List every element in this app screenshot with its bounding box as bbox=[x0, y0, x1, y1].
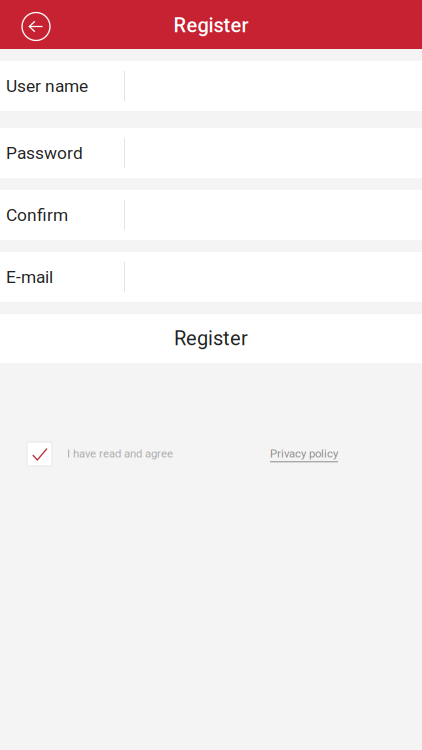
button[interactable]: Privacy policy bbox=[270, 447, 338, 462]
button[interactable]: Password bbox=[0, 128, 422, 178]
staticText: Privacy policy bbox=[270, 447, 338, 460]
button[interactable]: Register bbox=[0, 314, 422, 363]
button[interactable]: Confirm bbox=[0, 190, 422, 240]
staticText: Register bbox=[174, 327, 248, 350]
staticText: User name bbox=[6, 76, 88, 96]
button[interactable]: Back bbox=[0, 2, 58, 46]
staticText: E-mail bbox=[6, 267, 53, 287]
button[interactable]: User name bbox=[0, 61, 422, 111]
staticText: Confirm bbox=[6, 205, 68, 225]
staticText: Password bbox=[6, 143, 83, 163]
button[interactable]: E-mail bbox=[0, 252, 422, 302]
staticText: I have read and agree bbox=[67, 447, 173, 460]
button[interactable]: I have read and agree bbox=[27, 442, 52, 466]
staticText: Register bbox=[173, 14, 248, 37]
